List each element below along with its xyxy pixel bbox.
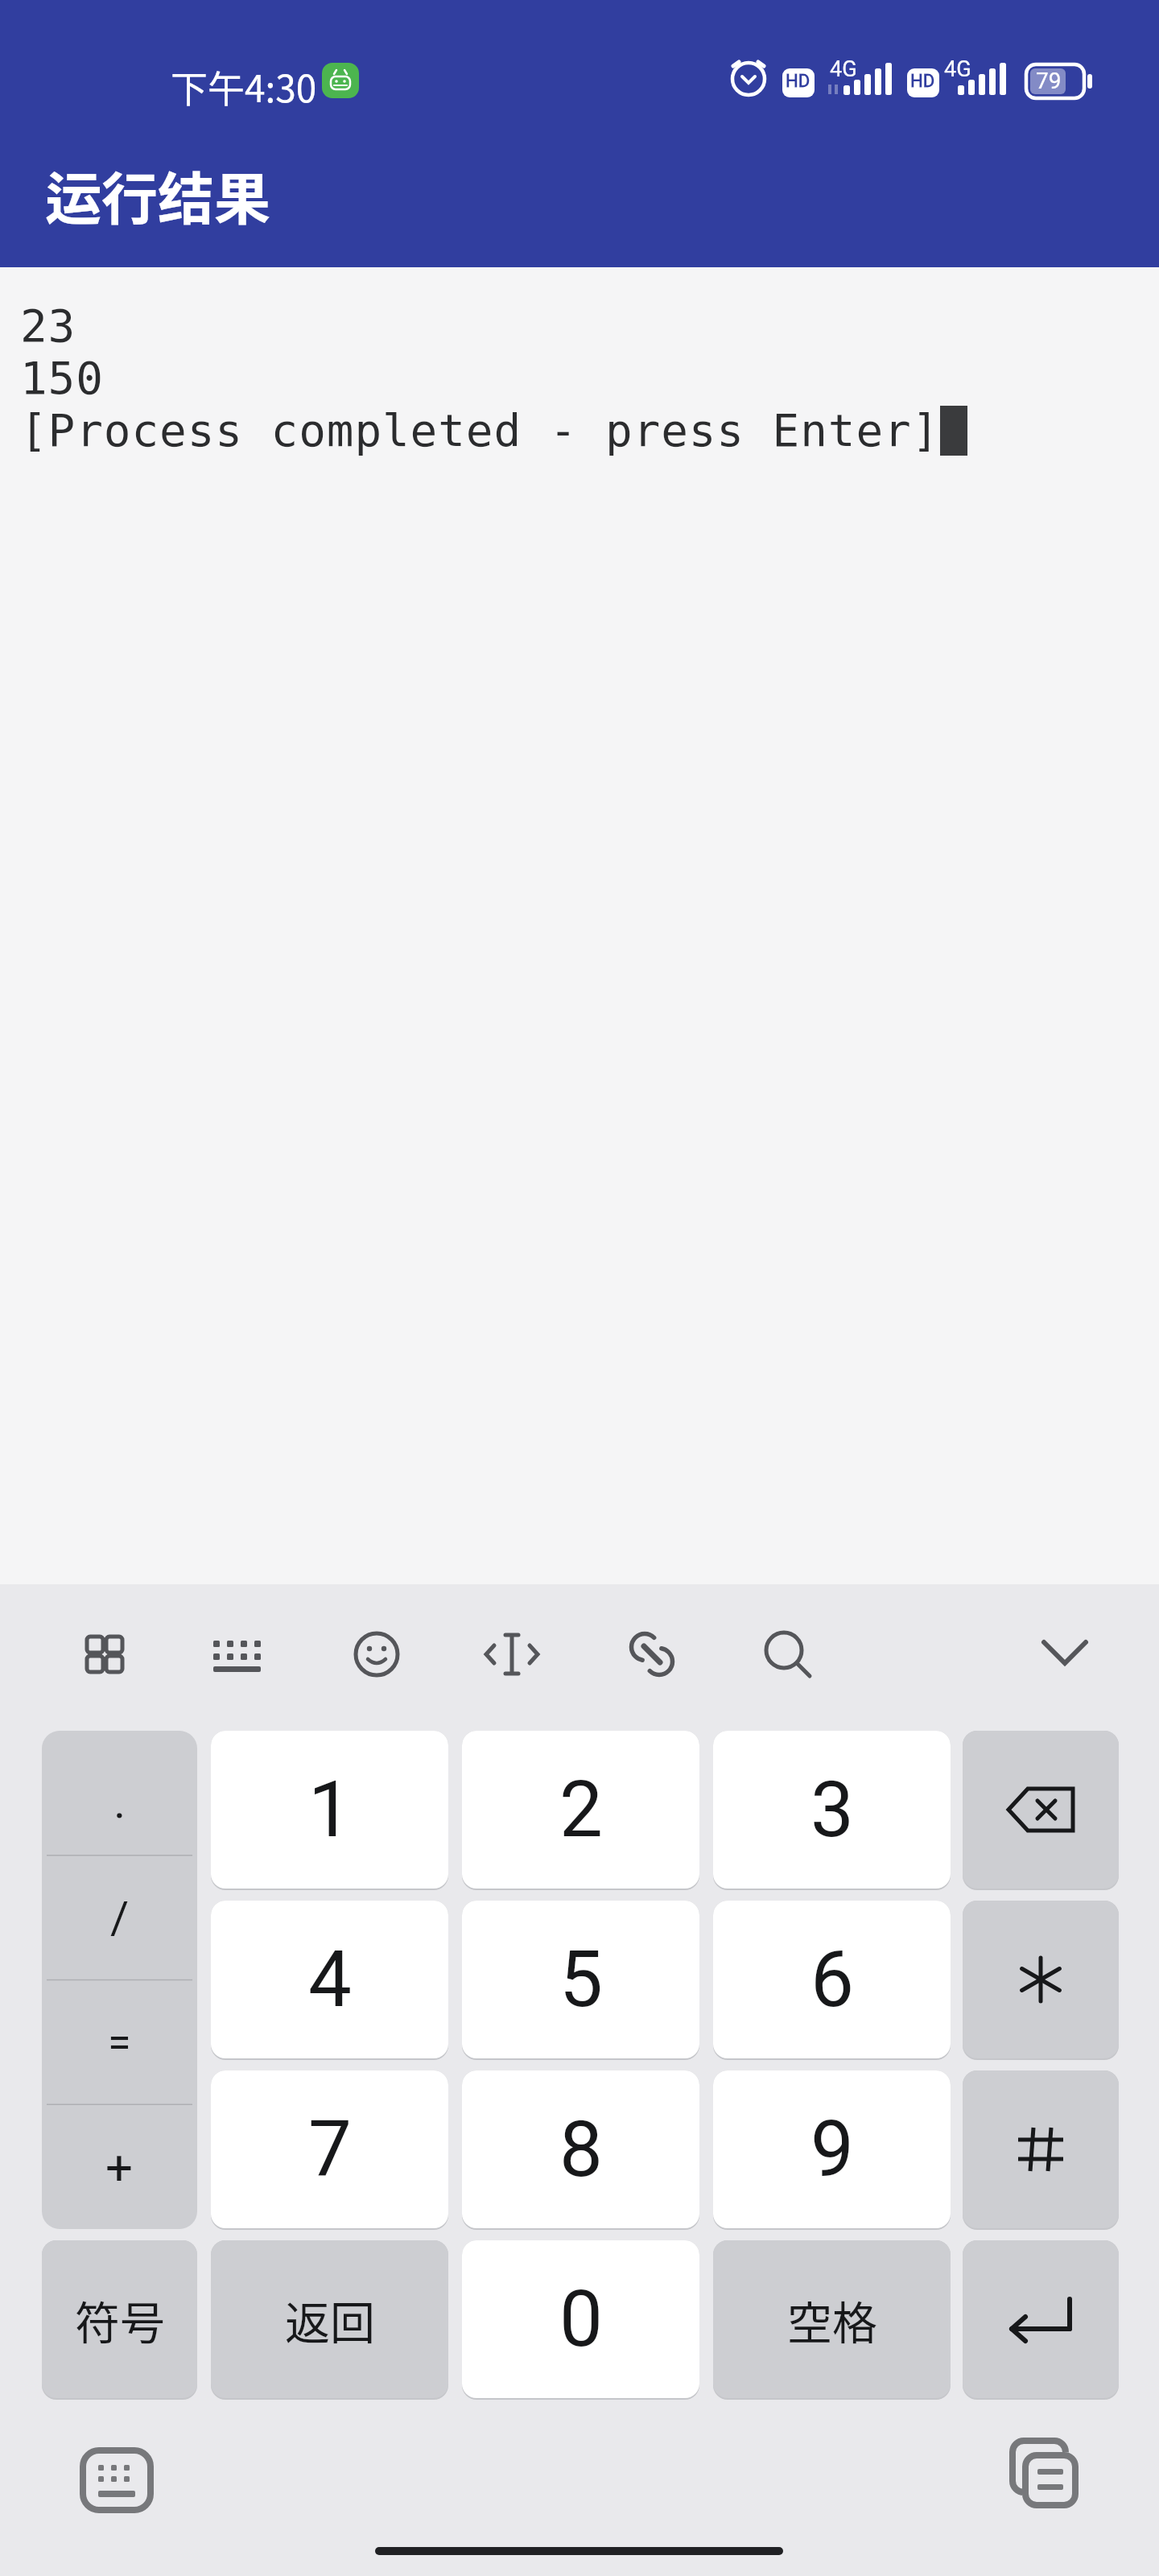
button[interactable]: 4 [211, 1901, 448, 2058]
button[interactable]: 1 [211, 1731, 448, 1889]
button[interactable]: 8 [462, 2070, 699, 2228]
button[interactable]: = [42, 1980, 197, 2105]
button[interactable]: 返回 [211, 2240, 448, 2398]
staticText: 9 [810, 2104, 854, 2195]
button[interactable]: 6 [713, 1901, 951, 2058]
staticText: 7 [308, 2104, 352, 2195]
button[interactable]: + [42, 2104, 197, 2229]
staticText: 8 [559, 2104, 603, 2195]
button[interactable]: 0 [462, 2240, 699, 2398]
staticText: 1 [308, 1765, 352, 1856]
staticText: 2 [559, 1765, 603, 1856]
button[interactable] [60, 1610, 149, 1699]
button[interactable]: 符号 [42, 2240, 197, 2398]
button[interactable] [196, 1610, 284, 1699]
button[interactable]: 空格 [713, 2240, 951, 2398]
staticText: 4 [308, 1934, 352, 2025]
staticText: 符号 [75, 2287, 165, 2352]
button[interactable] [76, 2444, 157, 2516]
button[interactable]: 2 [462, 1731, 699, 1889]
staticText: + [105, 2139, 134, 2195]
button[interactable] [332, 1610, 421, 1699]
staticText: 23 [20, 299, 76, 352]
button[interactable] [963, 2240, 1119, 2398]
staticText: 空格 [787, 2287, 877, 2352]
staticText: 运行结果 [45, 155, 270, 236]
staticText: 150 [20, 352, 104, 404]
button[interactable] [608, 1610, 696, 1699]
staticText: 5 [559, 1934, 603, 2025]
button[interactable] [963, 1731, 1119, 1889]
button[interactable] [742, 1610, 831, 1699]
staticText: . [113, 1774, 126, 1829]
staticText: 79 [1036, 68, 1062, 94]
button[interactable]: 7 [211, 2070, 448, 2228]
button[interactable]: 9 [713, 2070, 951, 2228]
button[interactable]: 5 [462, 1901, 699, 2058]
staticText: = [108, 2018, 131, 2067]
staticText: HD [910, 71, 935, 92]
staticText: 4G [944, 56, 971, 82]
button[interactable]: / [42, 1856, 197, 1980]
button[interactable]: . [42, 1731, 197, 1856]
button[interactable] [963, 2070, 1119, 2228]
staticText: 3 [810, 1765, 854, 1856]
staticText: [Process completed - press Enter] [20, 404, 940, 456]
staticText: 0 [559, 2274, 603, 2365]
button[interactable] [468, 1610, 556, 1699]
staticText: 6 [810, 1934, 854, 2025]
staticText: / [110, 1892, 130, 1945]
staticText: 下午4:30 [171, 60, 317, 114]
staticText: HD [786, 71, 810, 92]
staticText: 返回 [285, 2287, 375, 2352]
button[interactable] [1021, 1610, 1109, 1699]
button[interactable] [1004, 2439, 1085, 2516]
button[interactable]: 3 [713, 1731, 951, 1889]
button[interactable] [963, 1901, 1119, 2058]
staticText: 4G [830, 56, 857, 82]
